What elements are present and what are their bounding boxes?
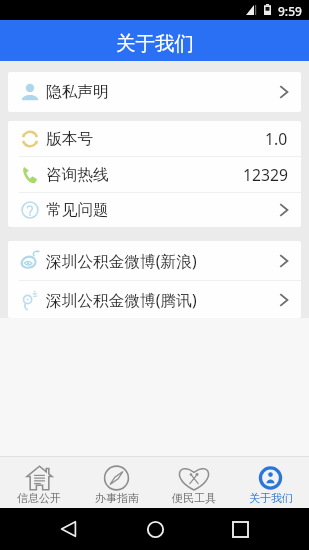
- staticText: 常见问题: [46, 200, 109, 220]
- button[interactable]: 深圳公积金微博(新浪): [8, 241, 301, 280]
- button[interactable]: 隐私声明: [8, 72, 301, 112]
- staticText: 12329: [243, 164, 288, 185]
- button[interactable]: Recents: [225, 514, 255, 544]
- button[interactable]: 信息公开: [0, 456, 78, 508]
- button[interactable]: 便民工具: [155, 456, 232, 508]
- staticText: 1.0: [265, 128, 288, 149]
- staticText: 深圳公积金微博(新浪): [46, 250, 197, 271]
- staticText: 办事指南: [95, 491, 139, 505]
- staticText: 便民工具: [172, 491, 216, 505]
- button[interactable]: Home: [140, 514, 170, 544]
- button[interactable]: 版本号: [8, 121, 301, 156]
- staticText: 关于我们: [249, 491, 293, 505]
- staticText: 9:59: [278, 3, 302, 19]
- staticText: 深圳公积金微博(腾讯): [46, 289, 197, 310]
- staticText: 隐私声明: [46, 82, 109, 102]
- staticText: 关于我们: [116, 31, 194, 56]
- staticText: 咨询热线: [46, 165, 109, 185]
- button[interactable]: 咨询热线: [8, 157, 301, 192]
- button[interactable]: 关于我们: [232, 456, 309, 508]
- button[interactable]: 深圳公积金微博(腾讯): [8, 281, 301, 318]
- staticText: 信息公开: [17, 491, 61, 505]
- button[interactable]: Back: [53, 514, 83, 544]
- button[interactable]: 办事指南: [78, 456, 155, 508]
- button[interactable]: 常见问题: [8, 193, 301, 227]
- staticText: 版本号: [46, 129, 94, 149]
